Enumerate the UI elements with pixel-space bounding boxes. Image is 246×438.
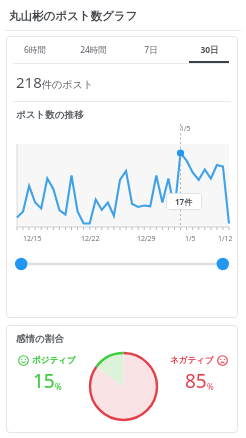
button[interactable]: 30日 <box>180 36 238 63</box>
button[interactable]: 17件 <box>175 196 193 207</box>
staticText: 6時間 <box>24 44 46 56</box>
staticText: 85 <box>185 368 207 394</box>
other: ネガティブ <box>217 355 228 366</box>
staticText: 30日 <box>200 44 219 56</box>
staticText: ポジティブ <box>32 355 76 366</box>
staticText: 1/12 <box>218 234 233 244</box>
staticText: 件のポスト <box>42 78 93 91</box>
button[interactable]: 期間スライダー <box>14 254 230 274</box>
staticText: 1/5 <box>185 234 196 244</box>
staticText: % <box>55 381 62 392</box>
other: ポジティブ <box>18 355 29 366</box>
button[interactable]: ポジティブ <box>18 355 76 394</box>
button[interactable]: 7日 <box>122 36 180 63</box>
staticText: 17件 <box>175 196 193 207</box>
staticText: 12/22 <box>81 234 100 244</box>
staticText: 12/15 <box>23 234 42 244</box>
staticText: 15 <box>33 368 55 394</box>
staticText: ネガティブ <box>170 355 214 366</box>
staticText: 感情の割合 <box>16 333 64 345</box>
staticText: ポスト数の推移 <box>16 109 84 121</box>
staticText: 218 <box>16 72 42 92</box>
staticText: 丸山彬のポスト数グラフ <box>9 9 138 23</box>
staticText: 24時間 <box>80 44 107 56</box>
staticText: 12/29 <box>137 234 156 244</box>
staticText: % <box>207 381 214 392</box>
button[interactable]: 6時間 <box>6 36 64 63</box>
button[interactable]: ネガティブ <box>170 355 228 394</box>
staticText: 7日 <box>144 44 158 56</box>
staticText: 1/5 <box>180 124 191 134</box>
button[interactable]: 24時間 <box>64 36 122 63</box>
